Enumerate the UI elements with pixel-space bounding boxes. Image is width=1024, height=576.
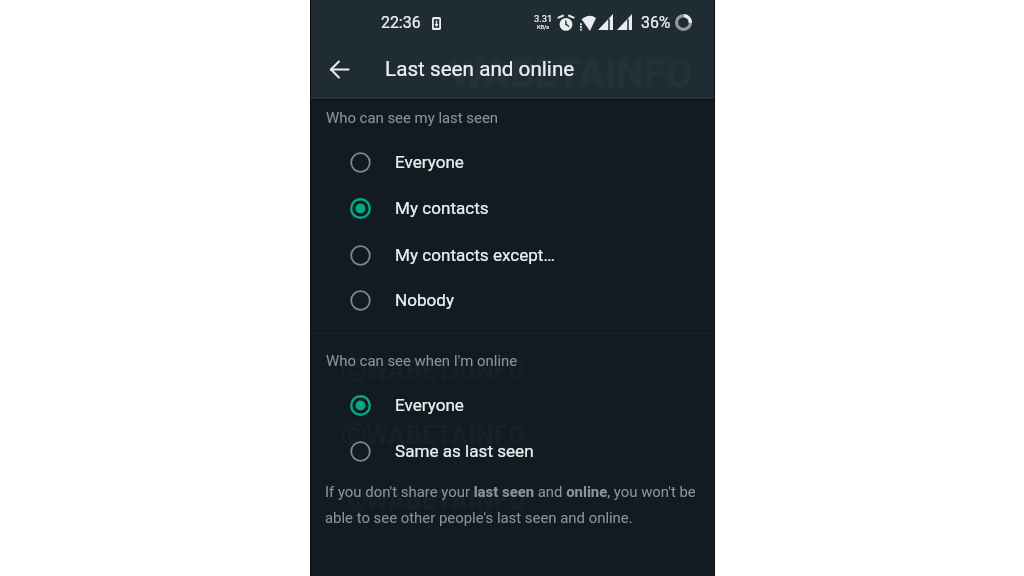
staticText: Who can see my last seen [326,109,499,126]
staticText: Last seen and online [385,57,575,81]
staticText: Nobody [395,290,455,310]
staticText: Everyone [395,395,464,415]
staticText: ⒸWABETAINFO [341,485,526,516]
staticText: Who can see when I'm online [326,352,518,369]
staticText: ⒸWABETAINFO [341,355,526,386]
button[interactable]: Same as last seen [310,428,715,474]
button[interactable]: Everyone [310,382,715,428]
staticText: 3.31 [534,13,553,24]
staticText: WABETAINFO [450,51,693,97]
staticText: 22:36 [381,13,421,32]
staticText: Everyone [395,152,464,172]
staticText: My contacts [395,198,489,218]
button[interactable]: Nobody [310,277,715,323]
staticText: My contacts except… [395,245,555,265]
staticText: KB/s [537,24,550,31]
staticText: Same as last seen [395,441,534,461]
button[interactable]: Everyone [310,139,715,185]
staticText: ⒸWABETAINFO [341,420,526,451]
staticText: If you don't share your last seen and on… [325,483,705,526]
button[interactable]: My contacts except… [310,232,715,278]
button[interactable]: My contacts [310,185,715,231]
button[interactable]: Back [319,49,359,89]
staticText: 36% [641,13,671,32]
